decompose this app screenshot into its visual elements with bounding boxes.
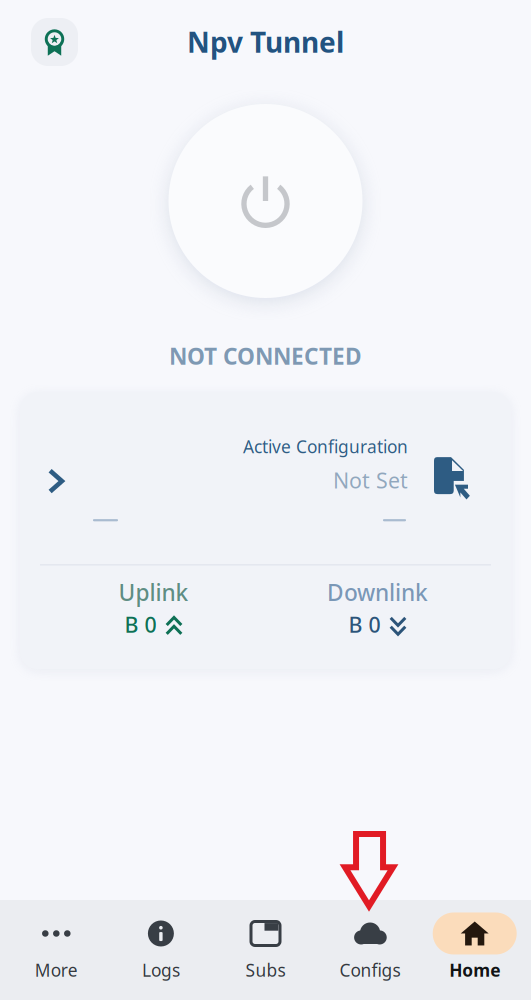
button[interactable]: Home — [422, 905, 527, 994]
staticText: Uplink — [118, 577, 188, 607]
button[interactable]: Connect — [168, 104, 362, 298]
staticText: Subs — [245, 958, 285, 981]
button[interactable]: Subs — [213, 905, 318, 994]
button[interactable]: More — [4, 905, 109, 994]
staticText: B 0 — [348, 610, 380, 638]
staticText: B 0 — [124, 610, 156, 638]
staticText: Logs — [142, 958, 180, 981]
staticText: Not Set — [333, 466, 408, 494]
staticText: More — [35, 958, 78, 981]
button[interactable]: Active Configuration, Not Set — [20, 392, 511, 544]
staticText: Active Configuration — [243, 435, 408, 458]
staticText: Configs — [340, 958, 401, 981]
staticText: NOT CONNECTED — [169, 341, 362, 371]
button[interactable]: Configs — [318, 905, 422, 994]
staticText: Downlink — [327, 577, 428, 607]
button[interactable]: Premium — [31, 18, 78, 66]
staticText: Home — [449, 958, 500, 981]
button[interactable]: Logs — [109, 905, 213, 994]
staticText: Npv Tunnel — [187, 23, 344, 61]
